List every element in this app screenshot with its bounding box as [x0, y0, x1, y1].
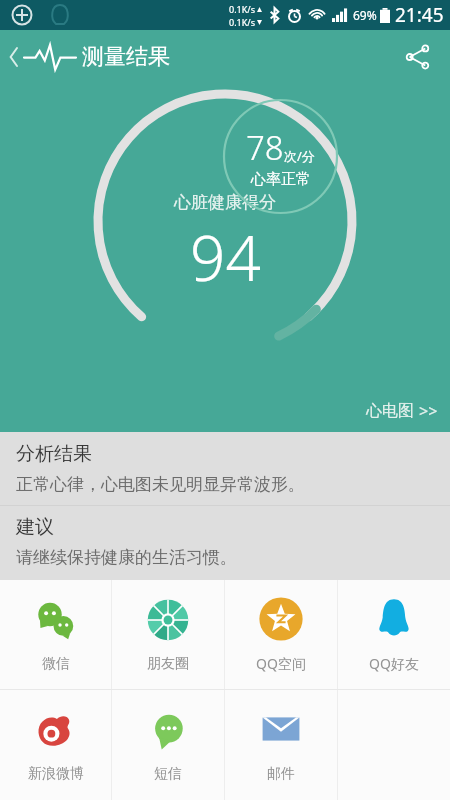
button[interactable]: 短信	[112, 690, 224, 800]
staticText: 心脏健康得分	[174, 192, 276, 213]
staticText: 21:45	[395, 2, 444, 28]
staticText: 短信	[154, 765, 182, 783]
button[interactable]: 朋友圈	[112, 580, 224, 689]
button[interactable]: 新浪微博	[0, 690, 111, 800]
staticText: QQ好友	[369, 654, 419, 673]
staticText: 正常心律，心电图未见明显异常波形。	[16, 474, 305, 495]
button[interactable]: Back	[0, 36, 178, 78]
staticText: 测量结果	[82, 43, 170, 71]
staticText: >>	[419, 400, 438, 422]
staticText: 次/分	[284, 147, 315, 165]
staticText: 心电图	[366, 401, 414, 421]
staticText: QQ空间	[256, 654, 306, 673]
staticText: 94	[190, 215, 261, 299]
staticText: 新浪微博	[28, 765, 84, 783]
staticText: 朋友圈	[147, 655, 189, 673]
staticText: 心率正常	[251, 170, 311, 189]
button[interactable]: QQ空间	[225, 580, 337, 689]
button[interactable]: 心电图	[356, 394, 450, 432]
button[interactable]: 微信	[0, 580, 111, 689]
staticText: 建议	[16, 515, 54, 539]
staticText: 请继续保持健康的生活习惯。	[16, 547, 237, 568]
staticText: 69%	[353, 7, 377, 23]
button[interactable]: QQ好友	[338, 580, 450, 689]
staticText: 78	[246, 125, 284, 170]
staticText: 0.1K/s	[229, 16, 255, 28]
staticText: 0.1K/s	[229, 3, 255, 15]
button[interactable]: 邮件	[225, 690, 337, 800]
button[interactable]: Share	[396, 35, 440, 79]
button[interactable]: 78	[222, 98, 339, 215]
staticText: 邮件	[267, 765, 295, 783]
staticText: 分析结果	[16, 442, 92, 466]
staticText: 微信	[42, 655, 70, 673]
